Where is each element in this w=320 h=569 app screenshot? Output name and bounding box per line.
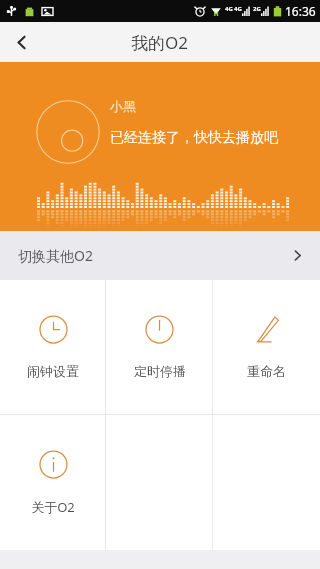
staticText: 已经连接了，快快去播放吧 (110, 129, 278, 147)
staticText: 闹钟设置 (27, 363, 79, 379)
staticText: 重命名 (247, 363, 286, 379)
button[interactable]: 闹钟设置 (0, 280, 106, 414)
button[interactable]: Back (0, 22, 42, 62)
button[interactable]: 重命名 (213, 280, 320, 414)
staticText: 关于O2 (31, 498, 75, 516)
staticText: 切换其他O2 (18, 246, 93, 265)
staticText: 16:36 (285, 3, 316, 19)
staticText: 我的O2 (131, 31, 189, 54)
staticText: 小黑 (110, 98, 136, 114)
staticText: 4G (225, 5, 233, 13)
staticText: 定时停播 (134, 363, 186, 379)
button[interactable]: 定时停播 (106, 280, 213, 414)
staticText: 4G (234, 5, 242, 13)
button[interactable]: 切换其他O2 (0, 231, 320, 280)
button[interactable]: 关于O2 (0, 415, 106, 550)
staticText: 2G (253, 5, 261, 13)
